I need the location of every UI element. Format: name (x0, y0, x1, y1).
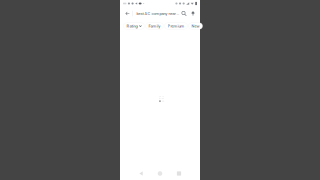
button[interactable]: best AC company near me (137, 7, 179, 19)
button[interactable]: Family (145, 23, 163, 29)
button[interactable]: Voice search (188, 8, 197, 19)
staticText: Family (148, 24, 160, 28)
button[interactable]: New (188, 23, 202, 29)
button[interactable]: Rating (123, 23, 144, 29)
button[interactable]: Home (150, 167, 169, 180)
staticText: Rating (126, 24, 137, 28)
button[interactable]: Back (122, 7, 132, 19)
button[interactable]: Premium (164, 23, 187, 29)
staticText: New (191, 24, 199, 28)
button[interactable]: Back (131, 167, 150, 180)
button[interactable]: Search (179, 8, 188, 19)
button[interactable]: Recent apps (169, 167, 188, 180)
staticText: Premium (167, 24, 184, 28)
staticText: best AC company near me (137, 11, 179, 16)
